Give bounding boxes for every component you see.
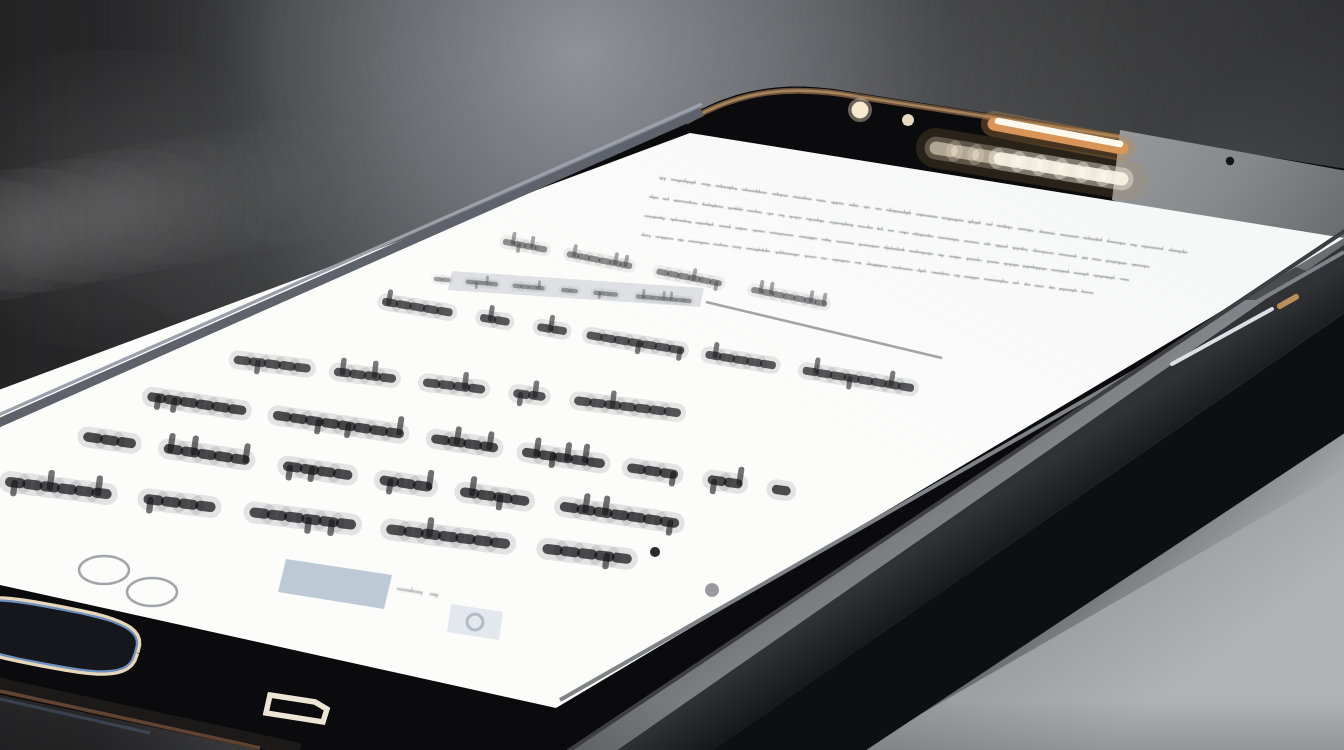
button[interactable]: Home	[0, 604, 150, 674]
button[interactable]: Document on screen	[0, 130, 1344, 600]
button[interactable]: Recent apps	[262, 684, 346, 734]
button[interactable]: Power	[1160, 292, 1310, 382]
